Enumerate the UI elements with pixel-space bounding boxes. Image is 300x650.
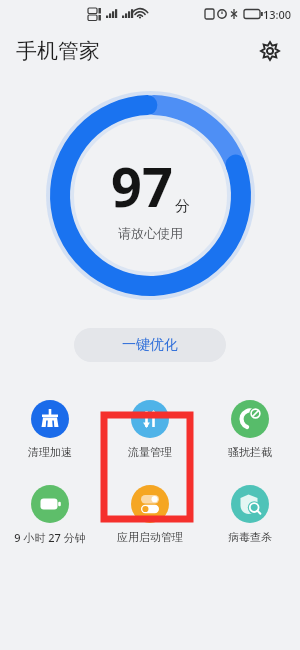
button[interactable]: 骚扰拦截 <box>200 398 300 461</box>
staticText: 13:00 <box>263 7 292 22</box>
button[interactable]: 清理加速 <box>0 398 100 461</box>
staticText: 骚扰拦截 <box>228 445 272 459</box>
button[interactable]: 流量管理 <box>100 398 200 461</box>
staticText: 手机管家 <box>16 38 100 64</box>
staticText: 一键优化 <box>122 336 178 354</box>
staticText: 流量管理 <box>128 445 172 459</box>
staticText: 9 小时 27 分钟 <box>14 530 86 545</box>
staticText: 请放心使用 <box>118 225 183 241</box>
button[interactable]: 应用启动管理 <box>100 483 200 546</box>
staticText: 清理加速 <box>28 445 72 459</box>
staticText: 病毒查杀 <box>228 530 272 544</box>
button[interactable]: 9 小时 27 分钟 <box>0 483 100 547</box>
staticText: 97 <box>111 149 173 223</box>
button[interactable]: 一键优化 <box>74 328 226 362</box>
staticText: 分 <box>175 197 190 216</box>
staticText: 应用启动管理 <box>117 530 183 544</box>
button[interactable]: Settings <box>252 33 288 69</box>
button[interactable]: 病毒查杀 <box>200 483 300 546</box>
